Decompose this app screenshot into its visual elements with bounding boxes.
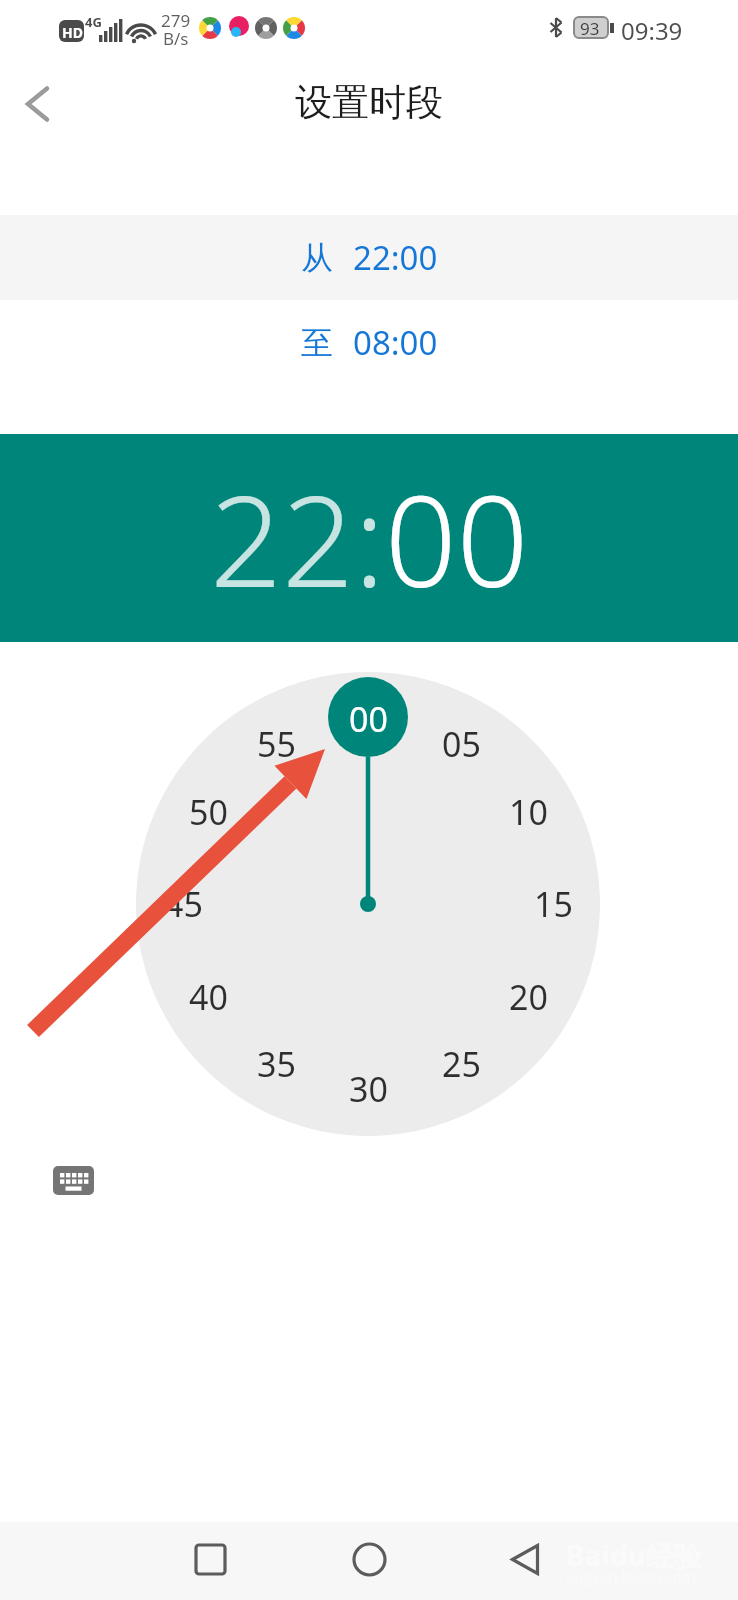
button[interactable]: 至 xyxy=(0,300,738,385)
staticText: HD xyxy=(62,23,83,42)
staticText: 05 xyxy=(442,721,481,767)
staticText: 50 xyxy=(189,789,228,835)
staticText: 从 xyxy=(301,238,333,278)
button[interactable] xyxy=(341,1531,397,1587)
staticText: B/s xyxy=(163,27,189,50)
staticText: 30 xyxy=(349,1066,388,1112)
staticText: 22:00 xyxy=(353,235,438,280)
staticText: 15 xyxy=(534,881,573,927)
staticText: 10 xyxy=(509,789,548,835)
button[interactable] xyxy=(182,1531,238,1587)
button[interactable]: 从 xyxy=(0,215,738,300)
staticText: 40 xyxy=(189,974,228,1020)
staticText: 22:00 xyxy=(210,452,529,624)
staticText: 25 xyxy=(442,1041,481,1087)
staticText: 93 xyxy=(580,17,600,40)
staticText: 20 xyxy=(509,974,548,1020)
staticText: 09:39 xyxy=(621,14,683,47)
staticText: 00 xyxy=(349,696,388,742)
button[interactable] xyxy=(497,1531,553,1587)
staticText: 279 xyxy=(161,9,191,32)
staticText: 45 xyxy=(164,881,203,927)
button[interactable] xyxy=(10,76,66,132)
staticText: 55 xyxy=(257,721,296,767)
staticText: 4G xyxy=(85,13,102,31)
staticText: 08:00 xyxy=(353,320,438,365)
staticText: 至 xyxy=(301,323,333,363)
staticText: 设置时段 xyxy=(295,79,443,126)
button[interactable] xyxy=(53,1166,94,1195)
staticText: 35 xyxy=(257,1041,296,1087)
